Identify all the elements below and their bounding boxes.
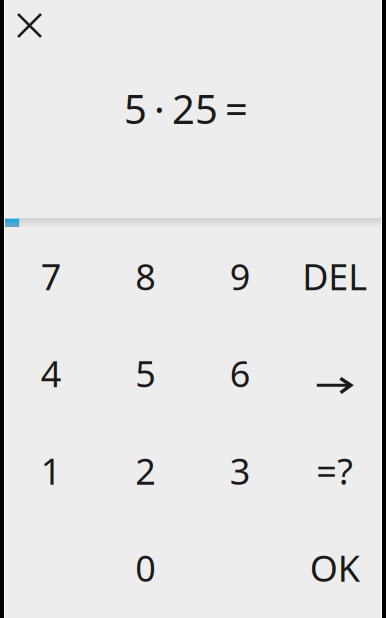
button[interactable]: 3 [193, 423, 287, 520]
staticText: 7 [41, 252, 62, 300]
staticText: =? [316, 447, 353, 495]
button[interactable]: 6 [193, 325, 287, 423]
button[interactable]: 5 [98, 325, 193, 423]
staticText: 0 [135, 544, 156, 592]
staticText: DEL [302, 252, 367, 300]
button[interactable]: 9 [193, 228, 287, 325]
button[interactable]: 2 [98, 423, 193, 520]
button[interactable]: 0 [98, 520, 193, 618]
button[interactable] [287, 325, 382, 423]
staticText: 6 [230, 349, 251, 397]
button[interactable]: 7 [4, 228, 98, 325]
staticText: 4 [41, 349, 62, 397]
button[interactable]: Close [0, 0, 59, 51]
staticText: 2 [135, 447, 156, 495]
staticText: 5 · 25 = [124, 82, 262, 135]
button[interactable]: =? [287, 423, 382, 520]
button[interactable]: 1 [4, 423, 98, 520]
staticText: 3 [230, 447, 251, 495]
button[interactable]: DEL [287, 228, 382, 325]
button[interactable]: 4 [4, 325, 98, 423]
staticText: OK [310, 544, 360, 592]
button[interactable]: OK [287, 520, 382, 618]
staticText: 1 [41, 447, 62, 495]
staticText: 8 [135, 252, 156, 300]
button[interactable]: 8 [98, 228, 193, 325]
staticText: 9 [230, 252, 251, 300]
staticText: 5 [135, 349, 156, 397]
